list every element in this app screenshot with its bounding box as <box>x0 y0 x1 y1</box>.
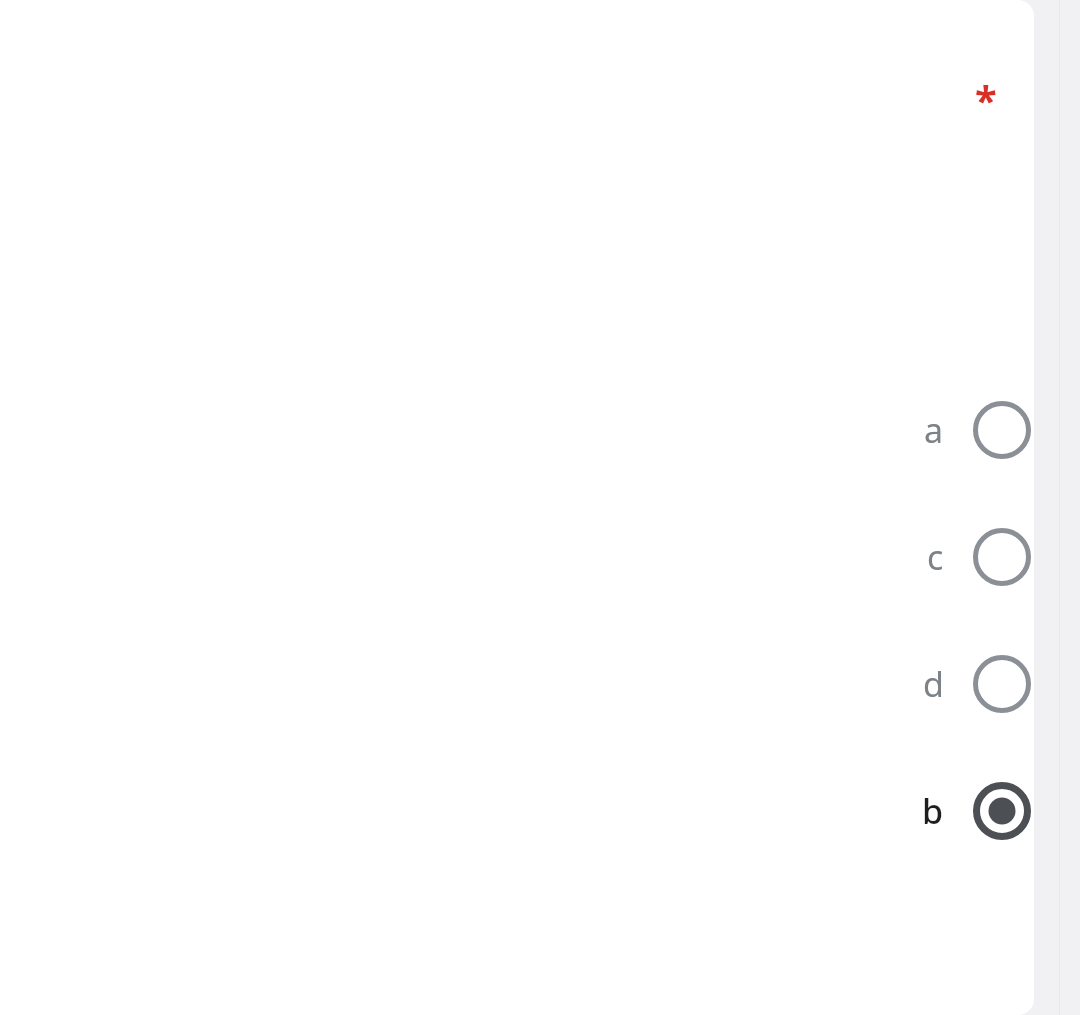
button[interactable]: d <box>870 654 1032 714</box>
staticText: a <box>924 407 944 453</box>
staticText: d <box>923 661 944 707</box>
other: Option <box>972 400 1032 460</box>
button[interactable]: * <box>964 72 1008 116</box>
other: Selected option <box>972 781 1032 841</box>
button[interactable]: a <box>870 400 1032 460</box>
other: Option <box>972 654 1032 714</box>
staticText: * <box>975 72 997 116</box>
button[interactable]: b <box>870 781 1032 841</box>
other: Option <box>972 527 1032 587</box>
staticText: c <box>927 534 944 580</box>
staticText: b <box>922 788 944 834</box>
button[interactable]: c <box>870 527 1032 587</box>
